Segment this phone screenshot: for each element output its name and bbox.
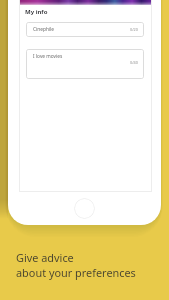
button[interactable]: I love movies [26,49,144,79]
staticText: 0/20 [130,27,138,32]
button[interactable]: Cinephile [26,22,144,37]
staticText: Cinephile [33,26,55,33]
staticText: I love movies [33,53,63,60]
staticText: about your preferences [16,265,136,280]
staticText: My info [25,8,48,16]
staticText: 0/40 [130,60,138,65]
staticText: Give advice [16,250,74,265]
button[interactable]: Home [74,198,95,219]
